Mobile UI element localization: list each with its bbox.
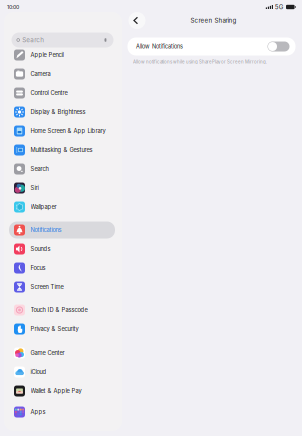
staticText: Screen Sharing <box>190 17 236 24</box>
staticText: Search <box>22 36 44 44</box>
button[interactable]: Screen Time <box>9 278 115 295</box>
staticText: iCloud <box>30 368 46 375</box>
staticText: Camera <box>30 70 50 77</box>
button[interactable]: Siri <box>9 179 115 196</box>
button[interactable]: Display & Brightness <box>9 103 115 120</box>
staticText: Game Center <box>30 349 64 356</box>
button[interactable]: Allow Notifications <box>127 37 295 55</box>
button[interactable]: Control Centre <box>9 84 115 101</box>
button[interactable]: Home Screen & App Library <box>9 122 115 139</box>
staticText: Apple Pencil <box>30 51 63 58</box>
button[interactable]: iCloud <box>9 363 115 380</box>
button[interactable]: Notifications <box>9 221 115 238</box>
staticText: Allow notifications while using SharePla… <box>133 59 267 64</box>
button[interactable]: Wallet & Apple Pay <box>9 382 115 399</box>
staticText: Multitasking & Gestures <box>30 146 92 153</box>
staticText: Screen Time <box>30 283 63 290</box>
staticText: Wallet & Apple Pay <box>30 387 81 394</box>
button[interactable]: Back <box>128 12 145 29</box>
staticText: Focus <box>30 264 45 271</box>
staticText: Sounds <box>30 245 50 252</box>
button[interactable]: Game Center <box>9 344 115 361</box>
staticText: Allow Notifications <box>136 43 183 50</box>
button[interactable]: Search <box>9 160 115 177</box>
staticText: Control Centre <box>30 89 67 96</box>
button[interactable]: Wallpaper <box>9 198 115 215</box>
staticText: Search <box>30 165 48 172</box>
button[interactable]: Camera <box>9 65 115 82</box>
staticText: Touch ID & Passcode <box>30 306 87 313</box>
button[interactable]: Sounds <box>9 240 115 257</box>
button[interactable]: Apps <box>9 403 115 420</box>
button[interactable]: Multitasking & Gestures <box>9 141 115 158</box>
staticText: Wallpaper <box>30 203 56 210</box>
button[interactable]: Apple Pencil <box>9 46 115 63</box>
staticText: Display & Brightness <box>30 108 85 115</box>
button[interactable]: Touch ID & Passcode <box>9 301 115 318</box>
staticText: Siri <box>30 184 38 191</box>
staticText: 5G <box>275 3 284 11</box>
staticText: Home Screen & App Library <box>30 127 105 134</box>
staticText: 10:00 <box>7 4 19 10</box>
button[interactable]: Search <box>11 32 113 47</box>
staticText: Apps <box>30 408 45 415</box>
staticText: Notifications <box>30 226 61 233</box>
staticText: Privacy & Security <box>30 325 78 332</box>
button[interactable]: Focus <box>9 259 115 276</box>
button[interactable]: Privacy & Security <box>9 320 115 337</box>
